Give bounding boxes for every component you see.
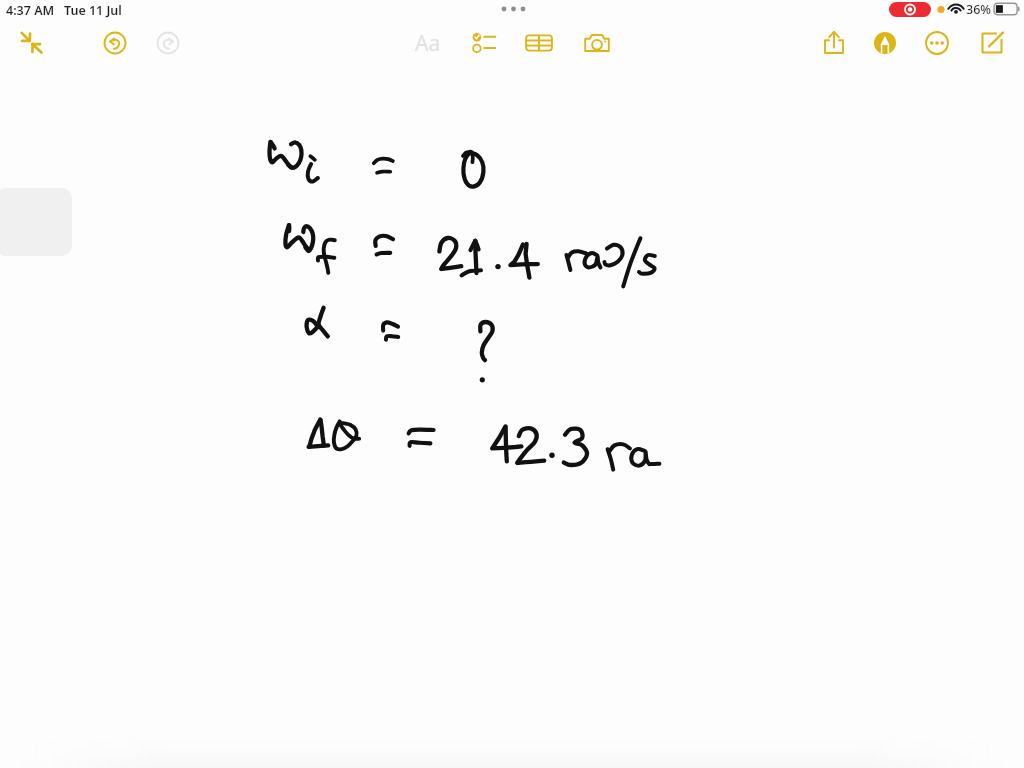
button[interactable]: Aa	[405, 21, 451, 65]
staticText: 4:37 AM Tue 11 Jul	[6, 2, 122, 19]
staticText: 36%	[966, 1, 991, 18]
button[interactable]: More options	[915, 21, 959, 65]
button[interactable]: Collapse	[9, 21, 53, 65]
button[interactable]: Redo	[146, 21, 190, 65]
button[interactable]: Checklist	[460, 21, 504, 65]
button[interactable]: Undo	[93, 21, 137, 65]
button[interactable]: New note	[970, 21, 1014, 65]
button[interactable]: Insert table	[517, 21, 561, 65]
button[interactable]: Share	[812, 21, 856, 65]
staticText: Aa	[415, 29, 441, 58]
button[interactable]: Camera	[575, 21, 619, 65]
button[interactable]: Markup	[863, 21, 907, 65]
